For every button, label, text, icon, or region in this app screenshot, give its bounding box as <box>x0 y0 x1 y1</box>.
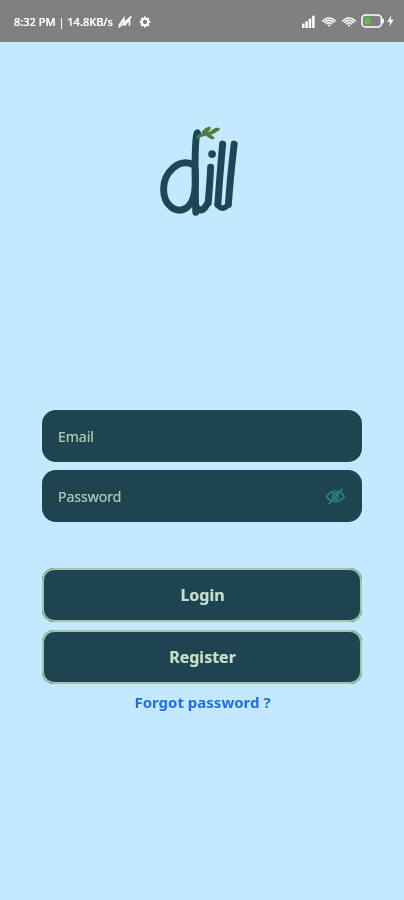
button[interactable]: Login <box>42 568 362 622</box>
staticText: Login <box>180 584 225 606</box>
button[interactable]: Email <box>42 410 362 462</box>
staticText: Email <box>58 427 94 446</box>
button[interactable]: Password <box>42 470 362 522</box>
button[interactable]: Register <box>42 630 362 684</box>
staticText: 8:32 PM | 14.8KB/s <box>14 14 113 29</box>
button[interactable]: Forgot password ? <box>126 690 279 714</box>
staticText: Register <box>169 646 236 668</box>
staticText: Password <box>58 487 122 506</box>
button[interactable]: Show password <box>320 481 350 511</box>
